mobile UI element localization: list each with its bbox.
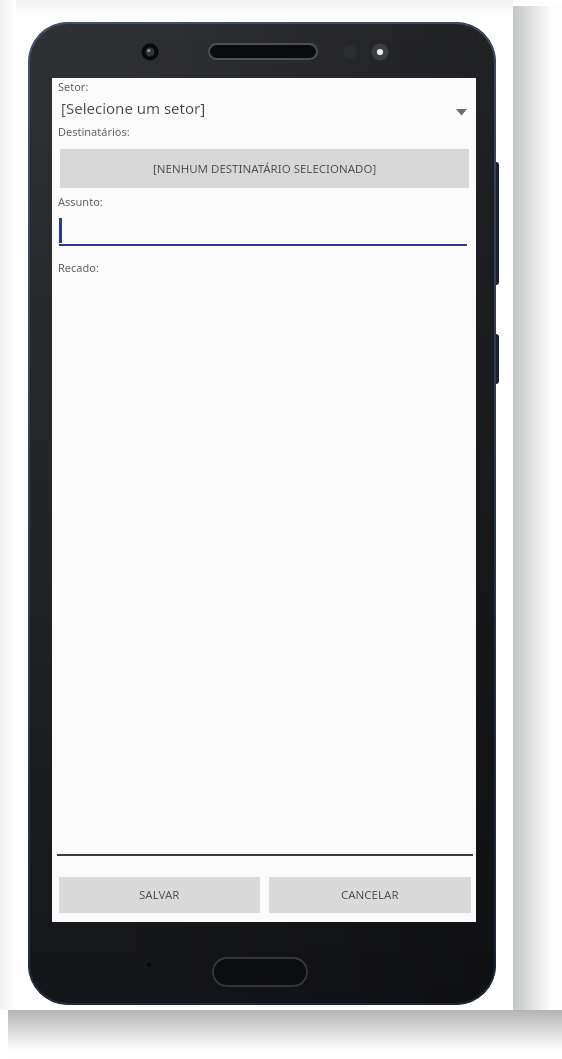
staticText: SALVAR [139, 887, 180, 903]
button[interactable]: [NENHUM DESTINATÁRIO SELECIONADO] [60, 149, 469, 188]
staticText: Assunto: [58, 194, 103, 209]
staticText: [NENHUM DESTINATÁRIO SELECIONADO] [153, 161, 377, 177]
button[interactable]: [Selecione um setor] [56, 98, 472, 122]
staticText: Setor: [58, 79, 89, 94]
button[interactable]: CANCELAR [269, 877, 471, 913]
staticText: [Selecione um setor] [61, 98, 206, 118]
staticText: CANCELAR [341, 887, 399, 903]
button[interactable]: SALVAR [59, 877, 260, 913]
staticText: Recado: [58, 260, 99, 275]
staticText: Destinatários: [58, 124, 130, 139]
